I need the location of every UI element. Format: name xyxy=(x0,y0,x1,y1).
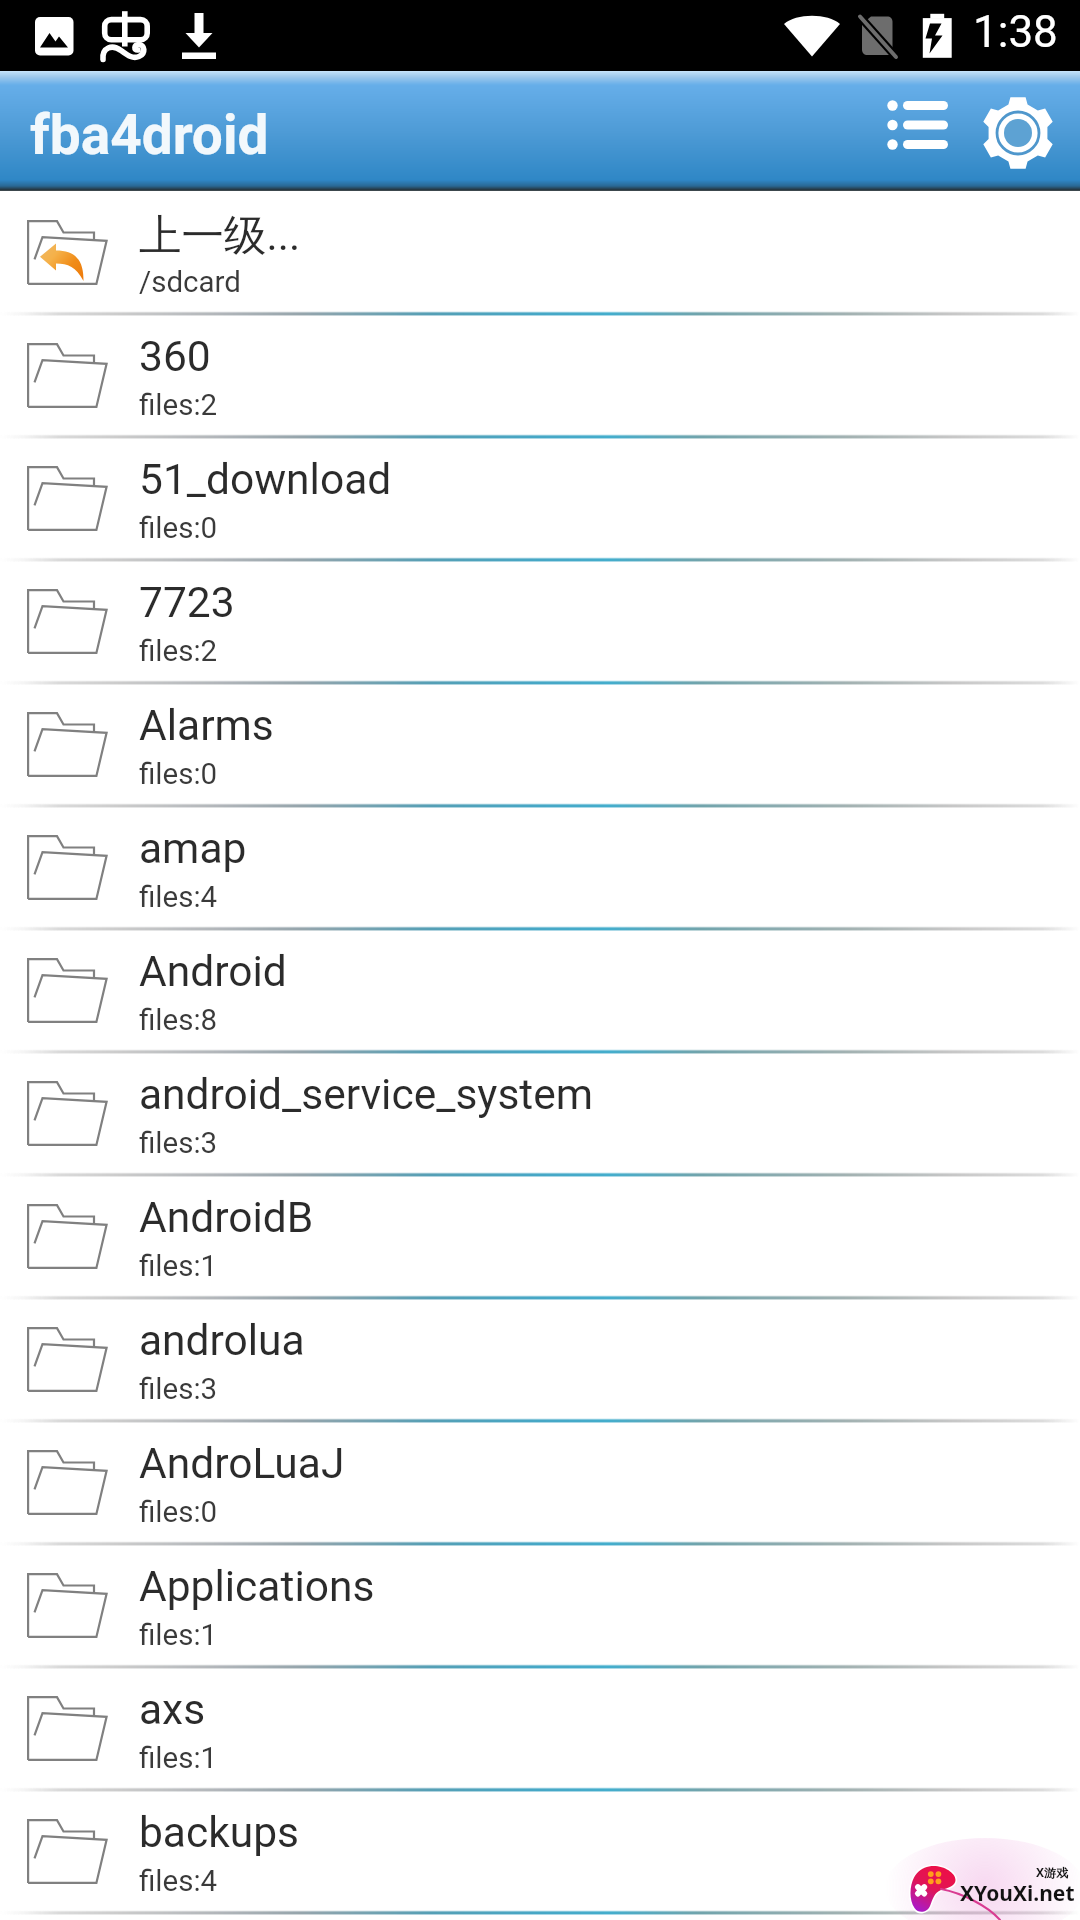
button[interactable]: androlua xyxy=(0,1298,1080,1421)
button[interactable]: 上一级... xyxy=(0,191,1080,314)
button[interactable]: Alarms xyxy=(0,683,1080,806)
button[interactable]: Applications xyxy=(0,1544,1080,1667)
staticText: files:1 xyxy=(139,1618,218,1653)
button[interactable]: android_service_system xyxy=(0,1052,1080,1175)
button[interactable]: Settings xyxy=(972,82,1064,182)
staticText: axs xyxy=(139,1685,206,1735)
staticText: files:0 xyxy=(139,1495,218,1530)
staticText: backups xyxy=(139,1808,299,1858)
button[interactable]: 7723 xyxy=(0,560,1080,683)
button[interactable]: backups xyxy=(0,1790,1080,1913)
staticText: AndroidB xyxy=(139,1193,314,1243)
button[interactable]: 51_download xyxy=(0,437,1080,560)
staticText: files:1 xyxy=(139,1741,218,1776)
button[interactable]: AndroidB xyxy=(0,1175,1080,1298)
staticText: X游戏 xyxy=(1036,1864,1069,1880)
staticText: Alarms xyxy=(139,701,274,751)
staticText: androlua xyxy=(139,1316,305,1366)
staticText: 360 xyxy=(139,332,211,382)
staticText: files:2 xyxy=(139,634,218,669)
staticText: 上一级... xyxy=(139,209,301,259)
staticText: fba4droid xyxy=(30,103,269,167)
staticText: android_service_system xyxy=(139,1070,594,1120)
staticText: Applications xyxy=(139,1562,375,1612)
staticText: amap xyxy=(139,824,247,874)
button[interactable]: AndroLuaJ xyxy=(0,1421,1080,1544)
button[interactable]: Android xyxy=(0,929,1080,1052)
staticText: 1:38 xyxy=(973,6,1058,58)
staticText: 51_download xyxy=(139,455,392,505)
staticText: files:0 xyxy=(139,757,218,792)
button[interactable]: 360 xyxy=(0,314,1080,437)
staticText: Android xyxy=(139,947,287,997)
staticText: files:3 xyxy=(139,1126,218,1161)
button[interactable]: axs xyxy=(0,1667,1080,1790)
button[interactable]: List view xyxy=(868,81,960,181)
staticText: XYouXi.net xyxy=(960,1879,1075,1908)
staticText: files:0 xyxy=(139,511,218,546)
staticText: files:1 xyxy=(139,1249,218,1284)
staticText: files:4 xyxy=(139,880,218,915)
button[interactable]: amap xyxy=(0,806,1080,929)
staticText: /sdcard xyxy=(139,265,241,300)
staticText: files:8 xyxy=(139,1003,218,1038)
staticText: 7723 xyxy=(139,578,235,628)
staticText: files:3 xyxy=(139,1372,218,1407)
staticText: files:4 xyxy=(139,1864,218,1899)
staticText: AndroLuaJ xyxy=(139,1439,345,1489)
staticText: files:2 xyxy=(139,388,218,423)
